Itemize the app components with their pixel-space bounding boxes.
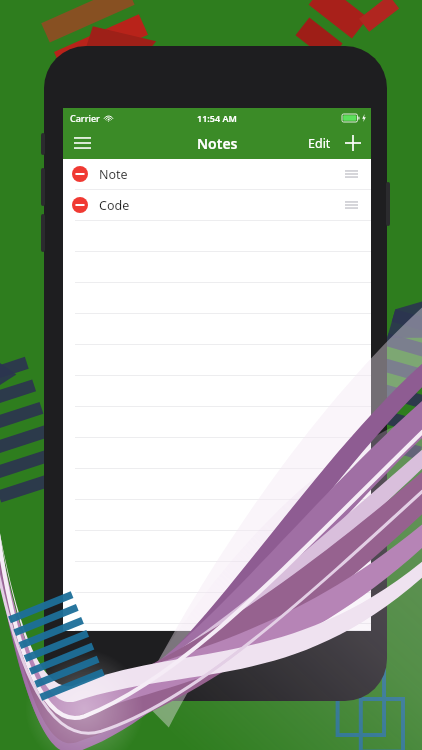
staticText: 11:54 AM <box>197 112 237 124</box>
staticText: Note <box>99 166 128 183</box>
button[interactable]: Delete Note <box>72 166 88 182</box>
button[interactable]: Menu <box>63 127 101 159</box>
button[interactable]: Edit <box>302 129 337 158</box>
button[interactable]: Reorder Note <box>339 164 363 184</box>
button[interactable]: Reorder Code <box>339 195 363 215</box>
button[interactable]: Add note <box>337 127 369 159</box>
button[interactable]: Delete Note <box>63 159 371 190</box>
button[interactable]: Delete Code <box>72 197 88 213</box>
staticText: Carrier <box>70 112 100 124</box>
staticText: Notes <box>197 134 238 153</box>
staticText: Code <box>99 197 130 214</box>
button[interactable]: Delete Code <box>63 190 371 221</box>
staticText: Edit <box>308 135 331 152</box>
